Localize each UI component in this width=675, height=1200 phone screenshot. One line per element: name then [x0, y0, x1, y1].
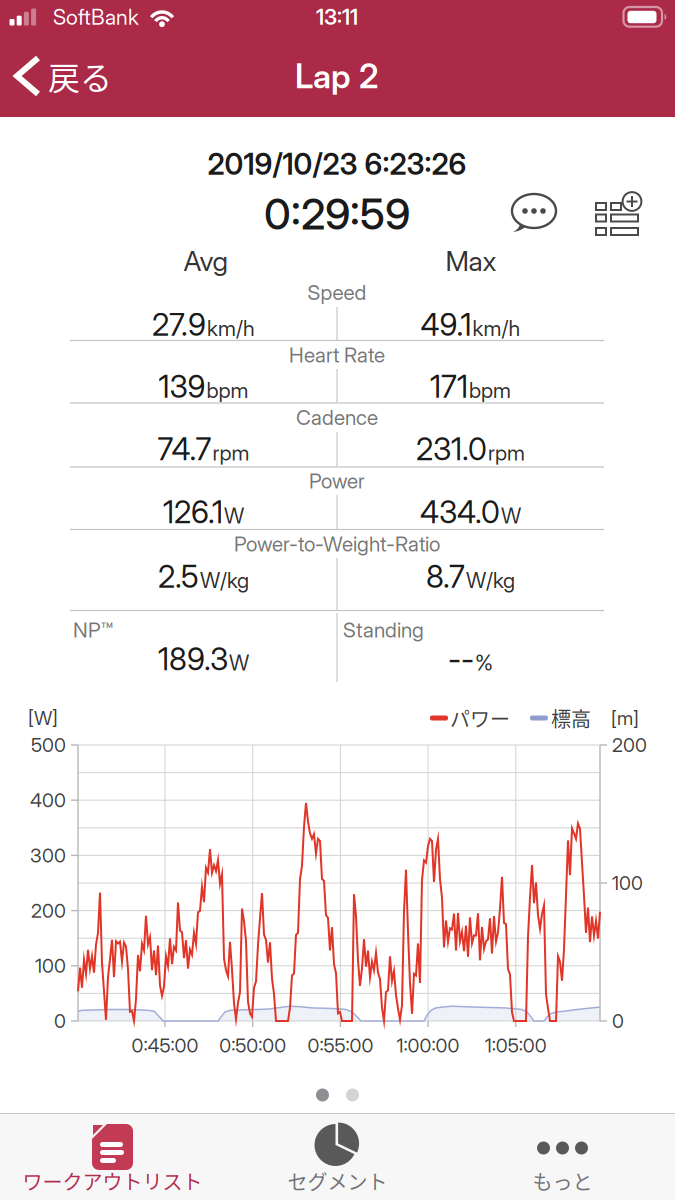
staticText: SoftBank — [53, 4, 139, 30]
staticText: 標高 — [551, 703, 591, 732]
staticText: 100 — [612, 871, 643, 895]
staticText: Power — [309, 468, 365, 493]
staticText: 434.0 — [420, 493, 500, 530]
staticText: 500 — [31, 733, 66, 757]
staticText: 300 — [30, 844, 66, 867]
staticText: bpm — [206, 377, 248, 403]
staticText: 200 — [612, 733, 647, 757]
staticText: Avg — [183, 244, 227, 278]
staticText: 100 — [35, 954, 66, 977]
staticText: W/kg — [200, 567, 249, 593]
staticText: Max — [445, 244, 496, 278]
staticText: NP™ — [73, 617, 113, 642]
staticText: 400 — [30, 788, 66, 812]
staticText: 126.1 — [163, 493, 223, 530]
staticText: 0:29:59 — [264, 188, 410, 240]
staticText: W — [224, 503, 244, 528]
staticText: km/h — [472, 315, 520, 341]
staticText: 49.1 — [420, 306, 471, 343]
button[interactable]: もっと — [450, 1114, 675, 1200]
staticText: 8.7 — [426, 558, 465, 595]
staticText: bpm — [469, 377, 511, 403]
staticText: rpm — [212, 440, 249, 465]
button[interactable] — [508, 193, 560, 237]
staticText: もっと — [532, 1166, 592, 1195]
staticText: 0:45:00 — [131, 1034, 198, 1057]
staticText: km/h — [207, 315, 255, 341]
staticText: 27.9 — [152, 306, 206, 343]
staticText: ワークアウトリスト — [22, 1166, 202, 1195]
staticText: 戻る — [48, 53, 112, 99]
staticText: Standing — [343, 617, 424, 642]
staticText: 139 — [158, 368, 205, 405]
staticText: 13:11 — [316, 4, 358, 30]
staticText: 0:55:00 — [307, 1034, 373, 1057]
staticText: % — [475, 650, 493, 675]
staticText: 189.3 — [158, 640, 228, 677]
staticText: 0 — [612, 1009, 624, 1033]
staticText: Speed — [307, 280, 366, 305]
staticText: Lap 2 — [295, 56, 379, 96]
staticText: W/kg — [466, 567, 515, 593]
button[interactable]: セグメント — [225, 1114, 450, 1200]
button[interactable] — [595, 193, 643, 237]
staticText: rpm — [488, 440, 525, 465]
staticText: [W] — [28, 706, 58, 730]
staticText: 0 — [54, 1009, 66, 1033]
button[interactable]: 戻る — [14, 48, 114, 104]
staticText: 1:05:00 — [485, 1034, 547, 1057]
button[interactable]: ワークアウトリスト — [0, 1114, 225, 1200]
staticText: 2019/10/23 6:23:26 — [207, 146, 466, 182]
staticText: -- — [448, 640, 474, 677]
staticText: 74.7 — [157, 430, 211, 467]
staticText: Power-to-Weight-Ratio — [234, 531, 440, 556]
staticText: Cadence — [296, 405, 378, 430]
staticText: 0:50:00 — [219, 1034, 286, 1057]
staticText: 1:00:00 — [397, 1034, 460, 1057]
staticText: W — [501, 503, 521, 528]
staticText: 231.0 — [416, 430, 487, 467]
staticText: W — [229, 650, 249, 675]
staticText: [m] — [611, 706, 639, 730]
staticText: セグメント — [287, 1166, 387, 1195]
staticText: 2.5 — [158, 558, 199, 595]
staticText: 200 — [31, 899, 66, 922]
staticText: 171 — [430, 368, 468, 405]
staticText: Heart Rate — [289, 342, 385, 367]
staticText: パワー — [450, 703, 510, 732]
